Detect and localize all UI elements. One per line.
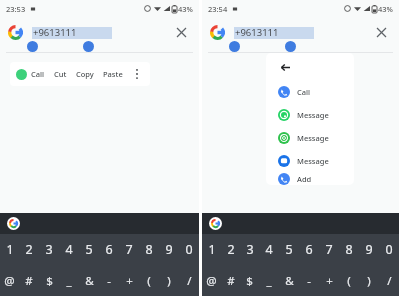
button[interactable]: $ — [39, 265, 59, 296]
staticText: Copy — [76, 69, 94, 79]
button[interactable]: 2 — [221, 234, 240, 265]
button[interactable]: 1 — [202, 234, 221, 265]
staticText: - — [307, 273, 311, 289]
button[interactable]: 8 — [139, 234, 159, 265]
button[interactable]: Dial — [16, 69, 27, 80]
staticText: Call — [297, 87, 311, 97]
staticText: $ — [246, 273, 253, 289]
staticText: Cut — [54, 69, 67, 79]
staticText: / — [387, 273, 392, 289]
button[interactable]: ) — [359, 265, 379, 296]
button[interactable]: & — [79, 265, 99, 296]
staticText: Message — [297, 133, 329, 143]
staticText: 3 — [45, 241, 53, 258]
staticText: 4 — [265, 241, 273, 258]
button[interactable]: Call — [31, 69, 45, 79]
button[interactable]: Copy — [76, 69, 94, 79]
button[interactable]: 6 — [99, 234, 119, 265]
button[interactable]: Clear — [171, 22, 191, 42]
staticText: 5 — [285, 241, 293, 258]
button[interactable]: + — [319, 265, 339, 296]
button[interactable]: ( — [339, 265, 359, 296]
staticText: _ — [266, 273, 272, 289]
button[interactable]: @ — [0, 265, 19, 296]
staticText: + — [326, 273, 333, 289]
button[interactable]: 5 — [279, 234, 299, 265]
button[interactable]: 8 — [339, 234, 359, 265]
staticText: 9 — [365, 241, 373, 258]
button[interactable]: Cut — [54, 69, 67, 79]
staticText: Add — [297, 174, 312, 184]
staticText: 2 — [227, 241, 235, 258]
staticText: & — [85, 273, 94, 289]
staticText: 9 — [165, 241, 173, 258]
button[interactable]: - — [99, 265, 119, 296]
staticText: 8 — [145, 241, 153, 258]
button[interactable]: 1 — [0, 234, 19, 265]
button[interactable]: Message — [266, 149, 354, 172]
button[interactable]: Message — [266, 126, 354, 149]
staticText: ( — [147, 273, 151, 289]
staticText: 1 — [208, 241, 216, 258]
staticText: 5 — [85, 241, 93, 258]
button[interactable]: Google — [209, 217, 222, 230]
button[interactable]: + — [119, 265, 139, 296]
staticText: 4 — [65, 241, 73, 258]
button[interactable]: Clear — [371, 22, 391, 42]
button[interactable]: ) — [159, 265, 179, 296]
button[interactable]: 0 — [379, 234, 399, 265]
button[interactable]: ( — [139, 265, 159, 296]
button[interactable]: 3 — [240, 234, 259, 265]
button[interactable]: 7 — [119, 234, 139, 265]
staticText: / — [187, 273, 192, 289]
button[interactable]: $ — [240, 265, 259, 296]
button[interactable]: Add — [266, 172, 354, 185]
button[interactable]: 9 — [359, 234, 379, 265]
button[interactable]: _ — [59, 265, 79, 296]
staticText: 1 — [6, 241, 14, 258]
button[interactable]: 9 — [159, 234, 179, 265]
staticText: 23:54 — [208, 4, 228, 14]
button[interactable]: Back — [278, 60, 292, 74]
button[interactable]: Call — [266, 80, 354, 103]
staticText: @ — [4, 273, 15, 289]
button[interactable]: & — [279, 265, 299, 296]
staticText: 23:53 — [6, 4, 26, 14]
button[interactable]: 6 — [299, 234, 319, 265]
button[interactable]: _ — [259, 265, 279, 296]
staticText: # — [25, 273, 33, 289]
staticText: 2 — [25, 241, 33, 258]
button[interactable]: 4 — [259, 234, 279, 265]
button[interactable]: / — [179, 265, 199, 296]
button[interactable]: 3 — [39, 234, 59, 265]
button[interactable]: # — [19, 265, 39, 296]
staticText: 0 — [185, 241, 193, 258]
button[interactable]: 5 — [79, 234, 99, 265]
staticText: @ — [206, 273, 217, 289]
button[interactable]: 2 — [19, 234, 39, 265]
button[interactable]: 0 — [179, 234, 199, 265]
staticText: 6 — [305, 241, 313, 258]
staticText: Paste — [103, 69, 123, 79]
button[interactable]: @ — [202, 265, 221, 296]
staticText: & — [285, 273, 294, 289]
button[interactable]: Google — [7, 217, 20, 230]
staticText: Message — [297, 156, 329, 166]
staticText: 43% — [178, 4, 193, 14]
button[interactable]: Paste — [103, 69, 123, 79]
button[interactable]: 4 — [59, 234, 79, 265]
staticText: ) — [367, 273, 371, 289]
staticText: 6 — [105, 241, 113, 258]
staticText: Call — [31, 69, 45, 79]
staticText: - — [107, 273, 111, 289]
button[interactable]: Message — [266, 103, 354, 126]
staticText: +9613111 — [235, 26, 279, 39]
staticText: +9613111 — [33, 26, 77, 39]
button[interactable]: # — [221, 265, 240, 296]
staticText: _ — [66, 273, 72, 289]
button[interactable]: 7 — [319, 234, 339, 265]
button[interactable]: - — [299, 265, 319, 296]
staticText: 7 — [125, 241, 133, 258]
button[interactable]: / — [379, 265, 399, 296]
button[interactable]: More options — [130, 67, 144, 81]
